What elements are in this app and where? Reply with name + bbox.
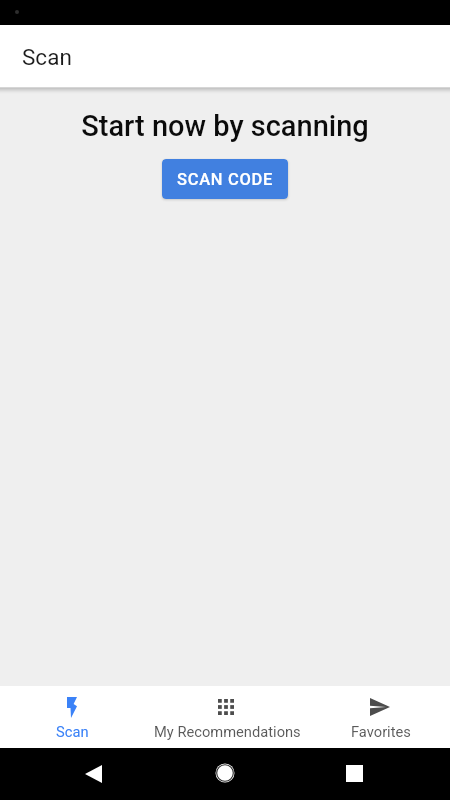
button[interactable]: Scan: [0, 686, 144, 748]
staticText: Favorites: [351, 723, 411, 740]
staticText: Start now by scanning: [81, 109, 369, 143]
button[interactable]: Home: [215, 763, 235, 783]
staticText: My Recommendations: [154, 723, 301, 740]
staticText: Scan: [56, 723, 89, 740]
staticText: Scan: [22, 44, 72, 70]
button[interactable]: Back: [85, 765, 102, 783]
button[interactable]: Favorites: [311, 686, 450, 748]
button[interactable]: SCAN CODE: [162, 159, 288, 199]
staticText: SCAN CODE: [177, 170, 274, 189]
button[interactable]: My Recommendations: [144, 686, 311, 748]
